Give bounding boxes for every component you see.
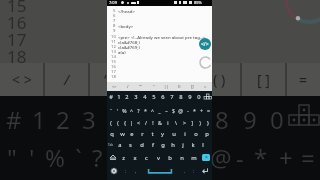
button[interactable]: [ ] (242, 63, 285, 96)
button[interactable]: v (152, 152, 164, 163)
button[interactable]: * (191, 106, 198, 115)
staticText: 17 (111, 69, 116, 75)
button[interactable]: - (184, 106, 191, 115)
button[interactable]: “ ” (90, 63, 133, 96)
button[interactable]: 7 (167, 92, 176, 101)
button[interactable]: q (107, 129, 117, 139)
button[interactable]: ] (188, 118, 196, 127)
button[interactable]: @ (177, 106, 184, 115)
button[interactable]: f (147, 140, 158, 150)
button[interactable]: = (199, 82, 212, 91)
button[interactable]: j (178, 140, 188, 150)
button[interactable]: } (204, 118, 212, 127)
button[interactable]: * (142, 106, 149, 115)
button[interactable]: g (158, 140, 168, 150)
button[interactable]: ^ (149, 106, 156, 115)
button[interactable]: ? (135, 106, 142, 115)
button[interactable]: 8 (176, 92, 185, 101)
staticText: 6 (161, 93, 165, 101)
button[interactable]: () (173, 82, 186, 91)
button[interactable]: l (198, 140, 208, 150)
button[interactable]: ‘ (114, 106, 121, 115)
staticText: ‘’ (153, 84, 155, 89)
button[interactable]: [] (186, 82, 199, 91)
button[interactable]: Space (140, 164, 180, 178)
button[interactable]: $ (170, 106, 177, 115)
button[interactable]: 5 (149, 92, 158, 101)
button[interactable]: . (180, 164, 189, 178)
button[interactable]: 2 (123, 92, 131, 101)
button[interactable]: n (176, 152, 188, 163)
button[interactable]: x (129, 152, 140, 163)
button[interactable]: t (147, 129, 157, 139)
button[interactable]: a (114, 140, 125, 150)
button[interactable]: z (118, 152, 129, 163)
button[interactable]: % (121, 106, 128, 115)
button[interactable]: <> (107, 82, 121, 91)
button[interactable]: : (189, 164, 199, 178)
button[interactable]: ( (114, 118, 121, 127)
button[interactable]: i (179, 129, 190, 139)
button[interactable]: Insert code tag (199, 38, 211, 50)
button[interactable]: = (287, 63, 320, 96)
button[interactable]: + (198, 106, 205, 115)
button[interactable]: 4 (140, 92, 149, 101)
button[interactable]: u (168, 129, 179, 139)
button[interactable]: Tab (107, 140, 114, 150)
button[interactable]: p (201, 129, 212, 139)
button[interactable]: < > (0, 63, 43, 96)
button[interactable]: i (164, 118, 172, 127)
button[interactable]: 6 (158, 92, 167, 101)
button[interactable]: ( (107, 118, 114, 127)
button[interactable]: / (121, 82, 134, 91)
button[interactable]: ~ (163, 106, 170, 115)
button[interactable]: b (164, 152, 176, 163)
button[interactable]: _ (156, 106, 163, 115)
button[interactable]: Backspace (200, 152, 212, 163)
button[interactable]: Settings (107, 164, 120, 178)
button[interactable]: ^ (128, 106, 135, 115)
button[interactable]: / (45, 63, 88, 96)
button[interactable]: d (136, 140, 147, 150)
button[interactable]: y (157, 129, 168, 139)
button[interactable]: < (135, 118, 142, 127)
button[interactable]: > (180, 118, 188, 127)
button[interactable]: ! (149, 118, 156, 127)
button[interactable]: & (156, 118, 164, 127)
button[interactable]: / (142, 118, 149, 127)
button[interactable]: m (188, 152, 200, 163)
button[interactable]: Enter (199, 164, 212, 178)
button[interactable]: 0 (194, 92, 203, 101)
button[interactable]: ) (196, 118, 204, 127)
button[interactable]: = (205, 106, 212, 115)
staticText: j (182, 141, 184, 149)
button[interactable]: 9 (185, 92, 194, 101)
button[interactable]: c (140, 152, 152, 163)
button[interactable]: o (190, 129, 201, 139)
button[interactable]: | (128, 118, 135, 127)
button[interactable]: : (120, 164, 131, 178)
button[interactable]: s (125, 140, 136, 150)
staticText: \ (175, 119, 177, 126)
button[interactable]: \ (172, 118, 180, 127)
button[interactable]: k (188, 140, 198, 150)
staticText: & (158, 119, 162, 126)
button[interactable]: ( ) (198, 63, 240, 96)
button[interactable]: # (107, 92, 115, 101)
button[interactable]: “” (134, 82, 147, 91)
staticText: 18 (7, 45, 27, 68)
button[interactable]: w (117, 129, 127, 139)
button[interactable]: { (121, 118, 128, 127)
button[interactable]: ‘’ (147, 82, 160, 91)
button[interactable]: 1 (115, 92, 123, 101)
button[interactable]: Switch keyboard (203, 92, 212, 101)
button[interactable]: || (160, 82, 173, 91)
button[interactable]: 3 (131, 92, 140, 101)
button[interactable]: h (168, 140, 178, 150)
button[interactable]: , (131, 164, 140, 178)
button[interactable]: Shift (107, 152, 118, 163)
button[interactable]: r (137, 129, 147, 139)
button[interactable]: e (127, 129, 137, 139)
button[interactable]: ` (107, 106, 114, 115)
staticText: ~ (165, 107, 168, 114)
